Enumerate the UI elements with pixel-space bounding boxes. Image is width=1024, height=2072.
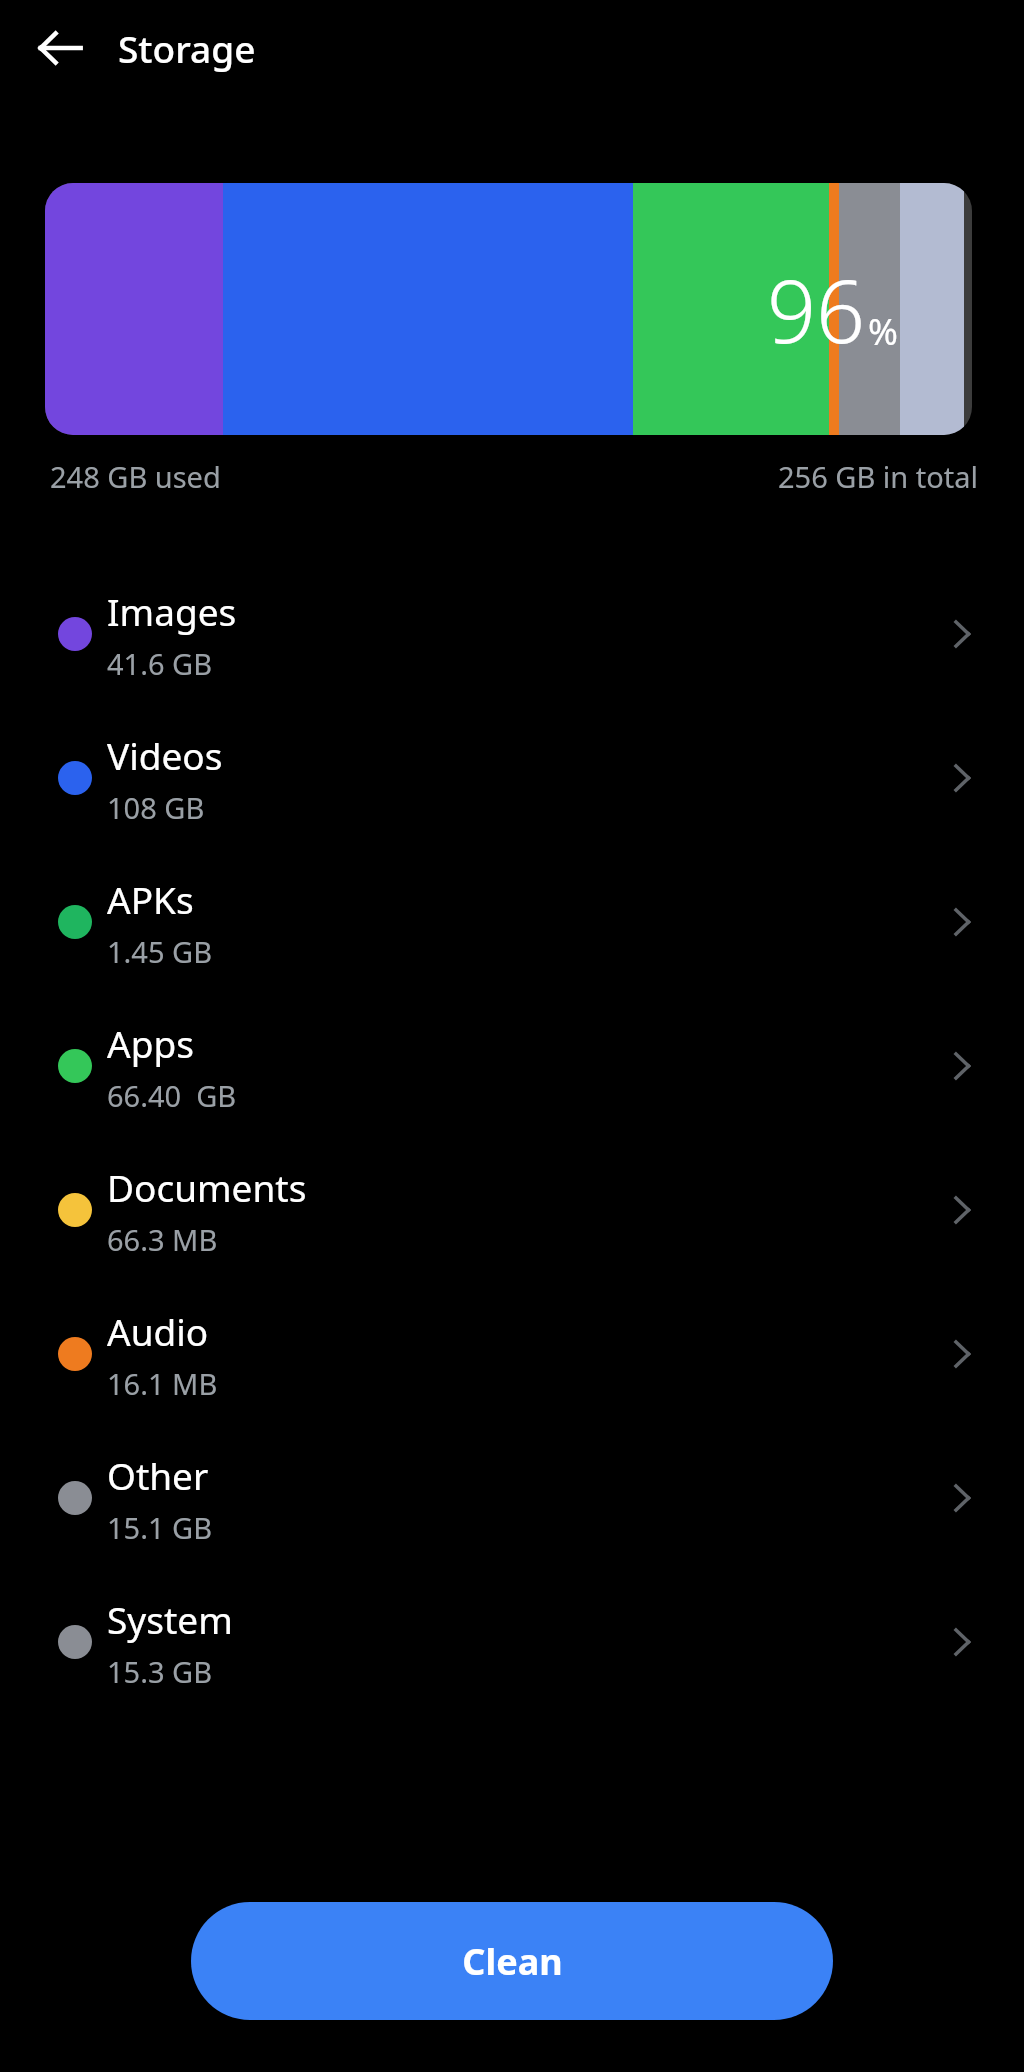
staticText: 66.3 MB bbox=[107, 1220, 218, 1259]
staticText: 66.40 GB bbox=[107, 1076, 237, 1115]
staticText: Other bbox=[107, 1450, 209, 1500]
staticText: 256 GB in total bbox=[778, 457, 978, 496]
staticText: Clean bbox=[462, 1937, 563, 1986]
staticText: System bbox=[107, 1594, 233, 1644]
button[interactable]: Videos bbox=[0, 706, 1024, 850]
button[interactable]: APKs bbox=[0, 850, 1024, 994]
staticText: 96 bbox=[767, 251, 866, 368]
button[interactable]: Other bbox=[0, 1426, 1024, 1570]
button[interactable]: Back bbox=[20, 8, 100, 88]
staticText: Storage bbox=[118, 23, 256, 73]
staticText: 1.45 GB bbox=[107, 932, 213, 971]
staticText: Images bbox=[107, 586, 237, 636]
staticText: 16.1 MB bbox=[107, 1364, 218, 1403]
button[interactable]: Images bbox=[0, 562, 1024, 706]
staticText: 248 GB used bbox=[50, 457, 221, 496]
button[interactable]: Clean bbox=[191, 1902, 833, 2020]
staticText: 15.1 GB bbox=[107, 1508, 213, 1547]
staticText: 108 GB bbox=[107, 788, 205, 827]
button[interactable]: Apps bbox=[0, 994, 1024, 1138]
staticText: % bbox=[868, 307, 898, 356]
staticText: Audio bbox=[107, 1306, 209, 1356]
staticText: Apps bbox=[107, 1018, 194, 1068]
button[interactable]: System bbox=[0, 1570, 1024, 1714]
staticText: APKs bbox=[107, 874, 194, 924]
staticText: Documents bbox=[107, 1162, 307, 1212]
button[interactable]: Documents bbox=[0, 1138, 1024, 1282]
button[interactable]: Audio bbox=[0, 1282, 1024, 1426]
staticText: 41.6 GB bbox=[107, 644, 213, 683]
staticText: 15.3 GB bbox=[107, 1652, 213, 1691]
staticText: Videos bbox=[107, 730, 223, 780]
